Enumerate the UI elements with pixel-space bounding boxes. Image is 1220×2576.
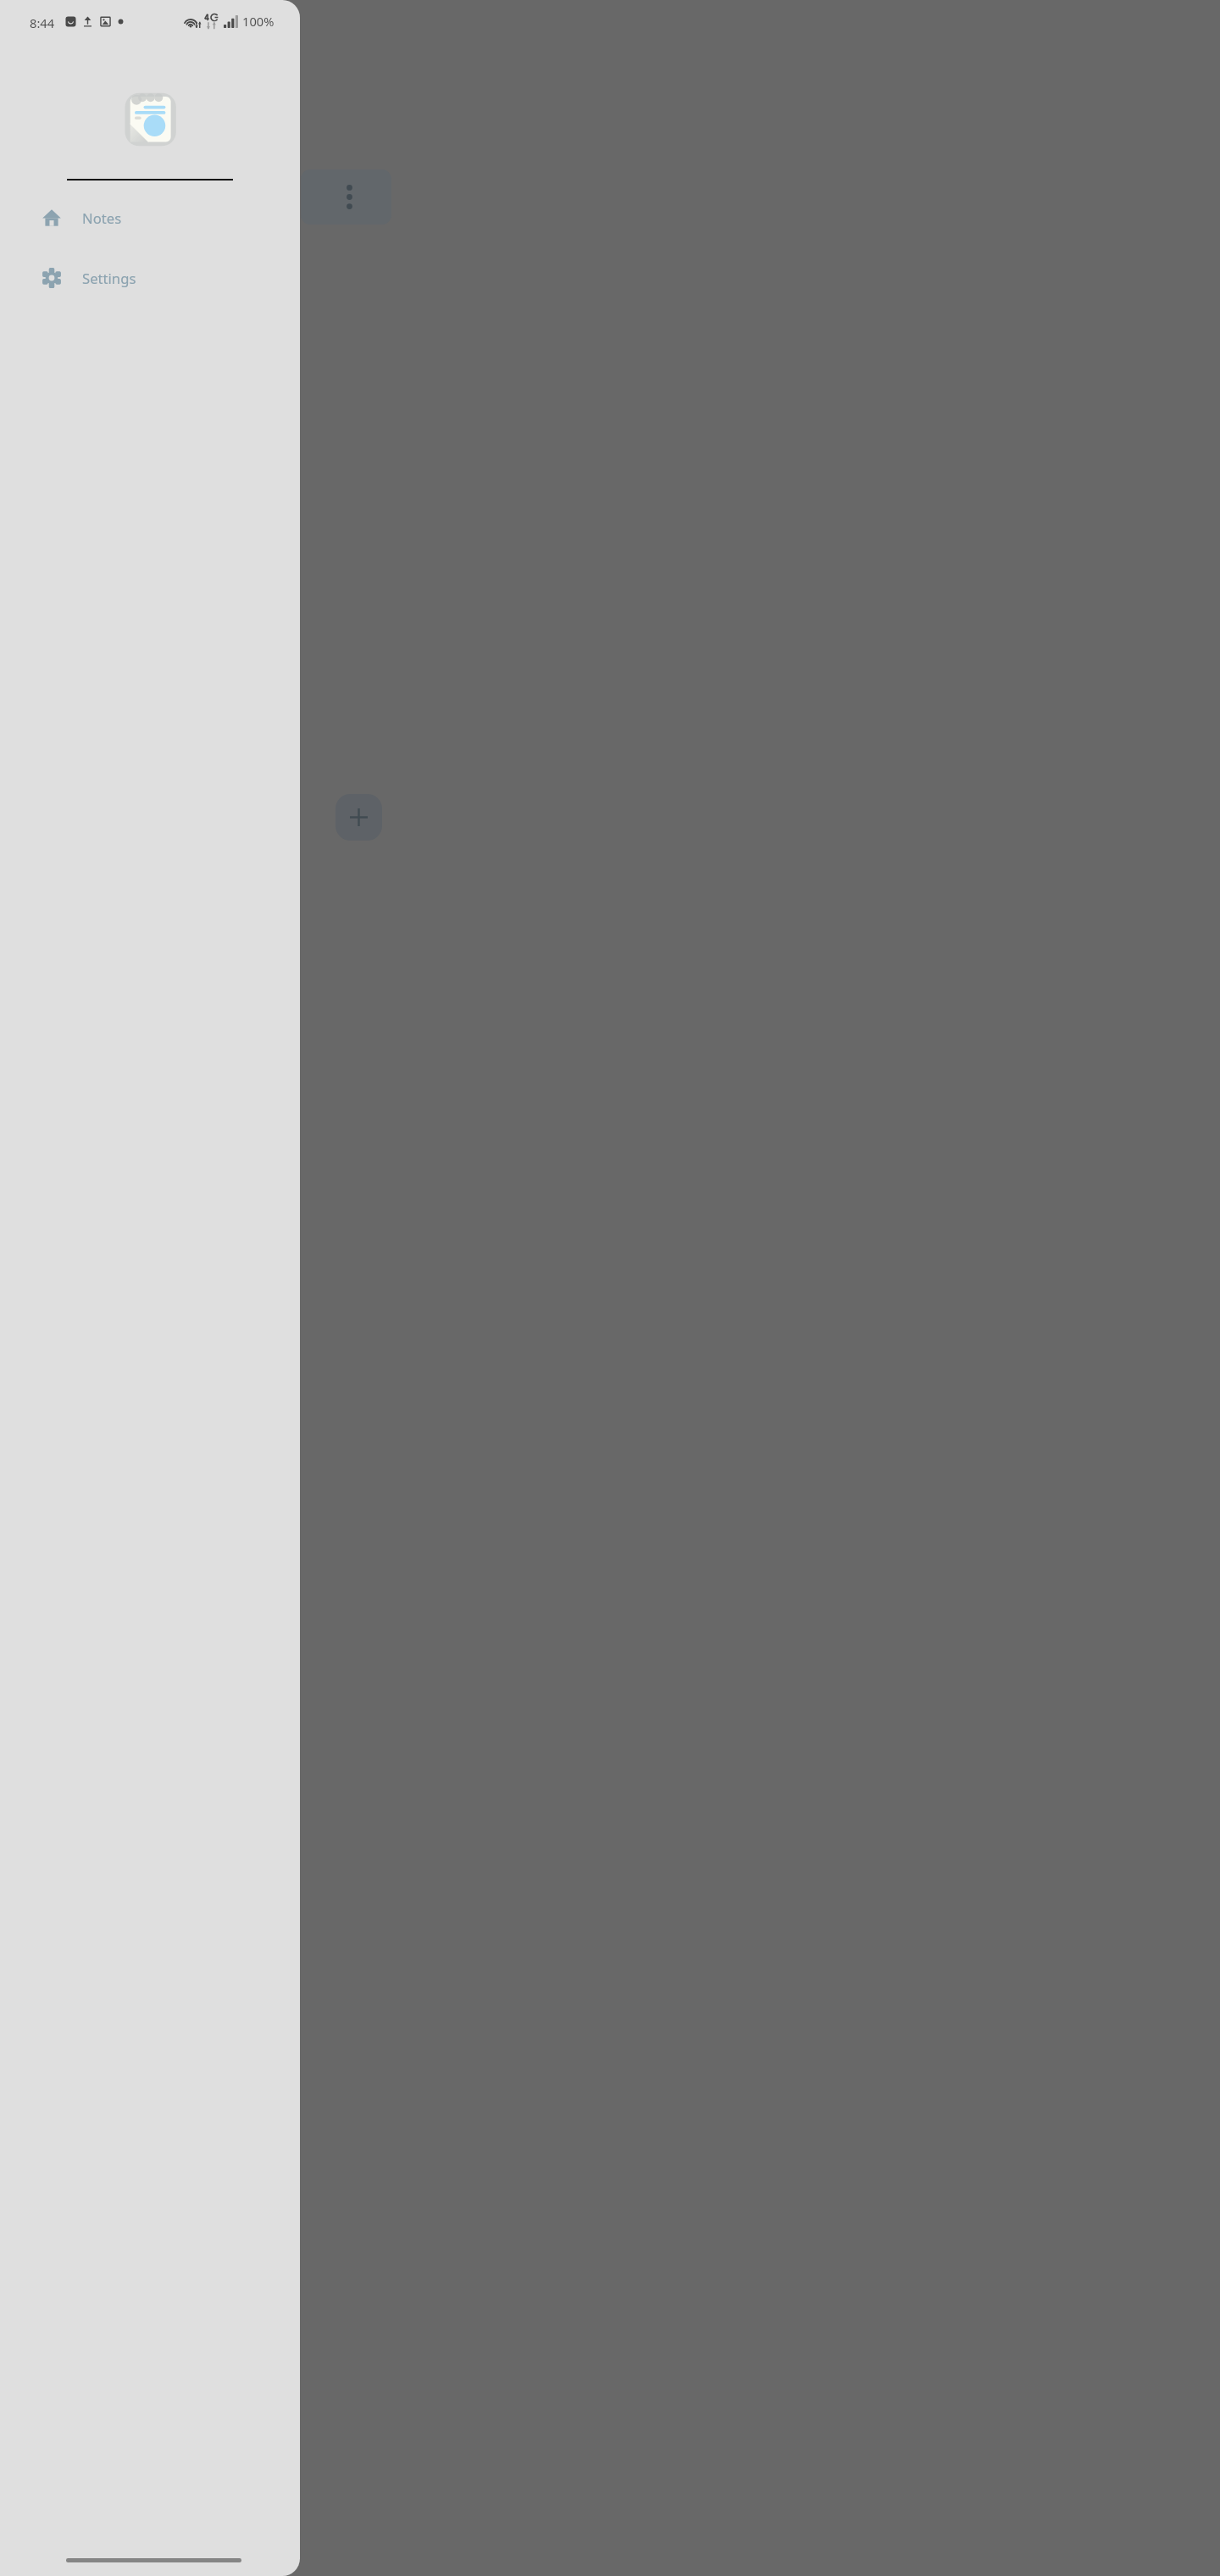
button[interactable]: Notes (0, 201, 300, 235)
staticText: Settings (82, 269, 136, 288)
staticText: 8:44 (30, 14, 55, 31)
button[interactable]: More options (301, 169, 391, 225)
staticText: Notes (82, 208, 122, 228)
staticText: 100% (242, 13, 274, 30)
button[interactable]: Settings (0, 261, 300, 295)
button[interactable]: Add note (335, 794, 382, 841)
button[interactable]: More options (335, 183, 363, 211)
